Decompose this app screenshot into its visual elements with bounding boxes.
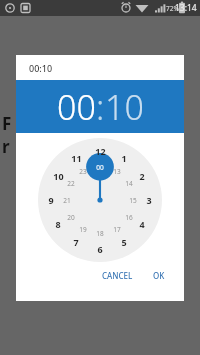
staticText: 17 [113, 225, 121, 234]
staticText: 22 [67, 179, 75, 188]
staticText: 12 [95, 145, 106, 157]
staticText: 00 [96, 163, 104, 172]
staticText: 15 [129, 196, 137, 205]
staticText: CANCEL [102, 270, 133, 281]
button[interactable]: 10 [105, 84, 144, 130]
button[interactable]: CANCEL [96, 266, 139, 285]
staticText: 3 [146, 194, 152, 206]
staticText: 21 [63, 196, 71, 205]
button[interactable]: Clock face, select hour [38, 138, 162, 262]
staticText: OK [153, 270, 165, 281]
staticText: F r [2, 112, 200, 158]
staticText: 6 [97, 243, 103, 255]
staticText: 7 [73, 236, 79, 248]
staticText: 72% [166, 4, 179, 13]
staticText: 4 [139, 218, 145, 230]
staticText: 8 [55, 218, 61, 230]
staticText: : [96, 84, 105, 130]
staticText: 00:10 [29, 62, 53, 74]
staticText: 2 [139, 170, 145, 182]
staticText: 1 [121, 152, 127, 164]
staticText: 19 [79, 225, 87, 234]
button[interactable]: 00 [57, 84, 96, 130]
staticText: 10 [53, 170, 64, 182]
staticText: 9 [48, 194, 54, 206]
staticText: 16 [125, 213, 133, 222]
staticText: 14 [125, 179, 133, 188]
staticText: 23 [79, 167, 87, 176]
button[interactable]: OK [147, 266, 171, 285]
staticText: 13:14 [175, 2, 197, 14]
staticText: 18 [96, 229, 104, 238]
staticText: 20 [67, 213, 75, 222]
staticText: 5 [121, 236, 127, 248]
staticText: 11 [71, 152, 82, 164]
staticText: 13 [113, 167, 121, 176]
